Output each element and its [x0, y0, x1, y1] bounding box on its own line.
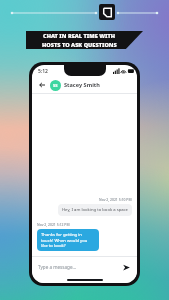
button[interactable]: Type a message... — [38, 257, 131, 277]
button[interactable]: Back — [37, 80, 47, 90]
button[interactable]: Thanks for getting in touch! When would … — [41, 232, 95, 248]
button[interactable]: Send — [121, 262, 131, 272]
staticText: Stacey Smith — [64, 81, 100, 89]
staticText: CHAT IN REAL TIME WITH — [43, 32, 116, 40]
staticText: Nov 2, 2021 5:10 PM — [99, 197, 132, 202]
staticText: Thanks for getting in touch! When would … — [41, 232, 95, 248]
button[interactable]: Logo — [99, 4, 115, 20]
button[interactable]: Hey, I am looking to book a space — [62, 207, 128, 213]
staticText: HOSTS TO ASK QUESTIONS — [42, 41, 117, 49]
staticText: 5:12 — [38, 68, 48, 75]
staticText: Hey, I am looking to book a space — [62, 207, 128, 213]
staticText: Nov 2, 2021 5:12 PM — [37, 222, 70, 227]
staticText: SS — [53, 83, 58, 89]
staticText: Type a message... — [38, 264, 77, 270]
